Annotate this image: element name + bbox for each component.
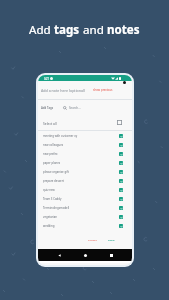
staticText: Search...	[69, 106, 81, 110]
button[interactable]: Team 3 Caddy	[43, 194, 123, 203]
staticText: prepare dessert	[43, 179, 64, 183]
staticText: show previous	[93, 88, 113, 92]
staticText: CANCEL	[88, 238, 97, 241]
button[interactable]: prepare dessert	[43, 176, 123, 185]
staticText: Add	[29, 22, 54, 38]
staticText: Terminolingsmodell	[43, 206, 70, 210]
staticText: quiz new	[43, 188, 55, 192]
button[interactable]: Terminolingsmodell	[43, 203, 123, 212]
staticText: DONE	[108, 238, 115, 241]
staticText: Add Tags	[41, 106, 54, 110]
staticText: tags	[54, 22, 80, 38]
staticText: Add a note here (optional)	[41, 88, 85, 93]
staticText: 3:21	[44, 77, 49, 80]
button[interactable]: show previous	[93, 88, 113, 92]
button[interactable]: new prefex	[43, 149, 123, 158]
staticText: new prefex	[43, 152, 58, 156]
button[interactable]: wedding	[43, 221, 123, 230]
button[interactable]: new colleagues	[43, 140, 123, 149]
staticText: vegetarian	[43, 215, 58, 219]
button[interactable]: vegetarian	[43, 212, 123, 221]
button[interactable]: meeting with customer xy	[43, 131, 123, 140]
button[interactable]: CANCEL	[86, 236, 99, 243]
button[interactable]: please organize gift	[43, 167, 123, 176]
staticText: please organize gift	[43, 170, 69, 174]
button[interactable]: Recents	[106, 250, 116, 260]
button[interactable]: DONE	[106, 236, 117, 243]
staticText: meeting with customer xy	[43, 134, 78, 138]
button[interactable]: Select all	[43, 115, 122, 130]
other: Search	[63, 106, 67, 110]
staticText: notes	[107, 22, 140, 38]
staticText: paper planes	[43, 161, 61, 165]
button[interactable]: paper planes	[43, 158, 123, 167]
staticText: Select all	[43, 121, 57, 125]
staticText: wedding	[43, 224, 55, 228]
button[interactable]: Back	[54, 250, 64, 260]
staticText: new colleagues	[43, 143, 64, 147]
staticText: Team 3 Caddy	[43, 197, 62, 201]
button[interactable]: quiz new	[43, 185, 123, 194]
staticText: and	[80, 22, 107, 38]
button[interactable]: Home	[80, 250, 90, 260]
